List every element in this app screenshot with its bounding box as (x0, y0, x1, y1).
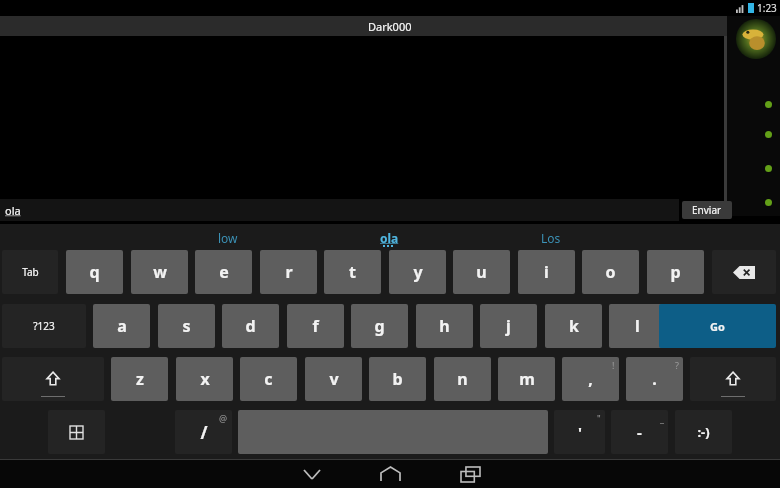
staticText: . (652, 368, 657, 390)
staticText: Go (710, 319, 725, 334)
staticText: _ (660, 412, 664, 424)
button[interactable]: m (498, 357, 555, 401)
staticText: x (200, 368, 210, 390)
staticText: y (413, 261, 423, 283)
staticText: h (439, 315, 450, 337)
staticText: k (569, 315, 579, 337)
staticText: , (588, 368, 593, 390)
staticText: Tab (22, 265, 39, 279)
button[interactable]: u (453, 250, 510, 294)
staticText: s (182, 315, 191, 337)
staticText: d (245, 315, 256, 337)
staticText: a (117, 315, 127, 337)
button[interactable]: g (351, 304, 408, 348)
button[interactable]: , (562, 357, 619, 401)
staticText: ola (380, 230, 399, 246)
button[interactable]: Tab (2, 250, 58, 294)
staticText: j (506, 315, 511, 337)
staticText: @ (219, 412, 228, 424)
staticText: g (374, 315, 385, 337)
button[interactable]: Hide keyboard (288, 462, 336, 486)
staticText: " (597, 412, 601, 424)
button[interactable]: / (175, 410, 232, 454)
button[interactable]: Shift (2, 357, 104, 401)
staticText: l (635, 315, 640, 337)
button[interactable]: f (287, 304, 344, 348)
button[interactable]: k (545, 304, 602, 348)
button[interactable]: :-) (675, 410, 732, 454)
staticText: n (457, 368, 468, 390)
button[interactable]: Change keyboard language (48, 410, 105, 454)
button[interactable]: o (582, 250, 639, 294)
button[interactable]: l (609, 304, 666, 348)
button[interactable]: ' (554, 410, 605, 454)
button[interactable]: Home (366, 462, 414, 486)
button[interactable]: ?123 (2, 304, 86, 348)
button[interactable]: x (176, 357, 233, 401)
staticText: ' (578, 422, 582, 442)
staticText: Enviar (692, 203, 722, 217)
button[interactable]: ola (0, 199, 679, 221)
button[interactable]: Los (501, 227, 601, 249)
button[interactable]: . (626, 357, 683, 401)
button[interactable]: i (518, 250, 575, 294)
staticText: ! (612, 359, 615, 371)
staticText: Dark000 (368, 19, 412, 34)
staticText: e (219, 261, 229, 283)
staticText: ? (675, 359, 679, 371)
staticText: z (136, 368, 144, 390)
staticText: v (329, 368, 339, 390)
button[interactable]: j (480, 304, 537, 348)
staticText: f (312, 315, 319, 337)
staticText: o (605, 261, 616, 283)
button[interactable]: s (158, 304, 215, 348)
staticText: Los (541, 230, 561, 246)
staticText: - (637, 422, 642, 442)
button[interactable]: Backspace (712, 250, 776, 294)
staticText: r (285, 261, 293, 283)
staticText: c (264, 368, 273, 390)
button[interactable]: h (416, 304, 473, 348)
button[interactable]: b (369, 357, 426, 401)
button[interactable]: d (222, 304, 279, 348)
button[interactable]: c (240, 357, 297, 401)
button[interactable]: w (131, 250, 188, 294)
button[interactable]: q (66, 250, 123, 294)
button[interactable]: a (93, 304, 150, 348)
button[interactable]: z (111, 357, 168, 401)
staticText: ?123 (33, 319, 55, 333)
staticText: q (89, 261, 100, 283)
button[interactable]: Recent apps (446, 462, 494, 486)
button[interactable]: n (434, 357, 491, 401)
button[interactable]: Go (659, 304, 776, 348)
staticText: t (349, 261, 356, 283)
button[interactable]: e (195, 250, 252, 294)
button[interactable]: low (178, 227, 278, 249)
staticText: 1:23 (757, 1, 777, 15)
staticText: low (218, 230, 238, 246)
staticText: b (392, 368, 403, 390)
button[interactable]: v (305, 357, 362, 401)
staticText: m (519, 368, 535, 390)
staticText: u (476, 261, 487, 283)
button[interactable]: Shift (690, 357, 776, 401)
staticText: / (200, 421, 208, 444)
staticText: ola (5, 203, 21, 218)
button[interactable]: r (260, 250, 317, 294)
button[interactable]: - (611, 410, 668, 454)
button[interactable]: p (647, 250, 704, 294)
button[interactable]: y (389, 250, 446, 294)
button[interactable]: ola (339, 227, 439, 249)
button[interactable]: Enviar (682, 201, 732, 219)
staticText: :-) (697, 423, 710, 441)
button[interactable]: Contact avatar (736, 19, 776, 59)
staticText: w (153, 261, 167, 283)
staticText: i (544, 261, 549, 283)
staticText: p (670, 261, 681, 283)
button[interactable]: t (324, 250, 381, 294)
